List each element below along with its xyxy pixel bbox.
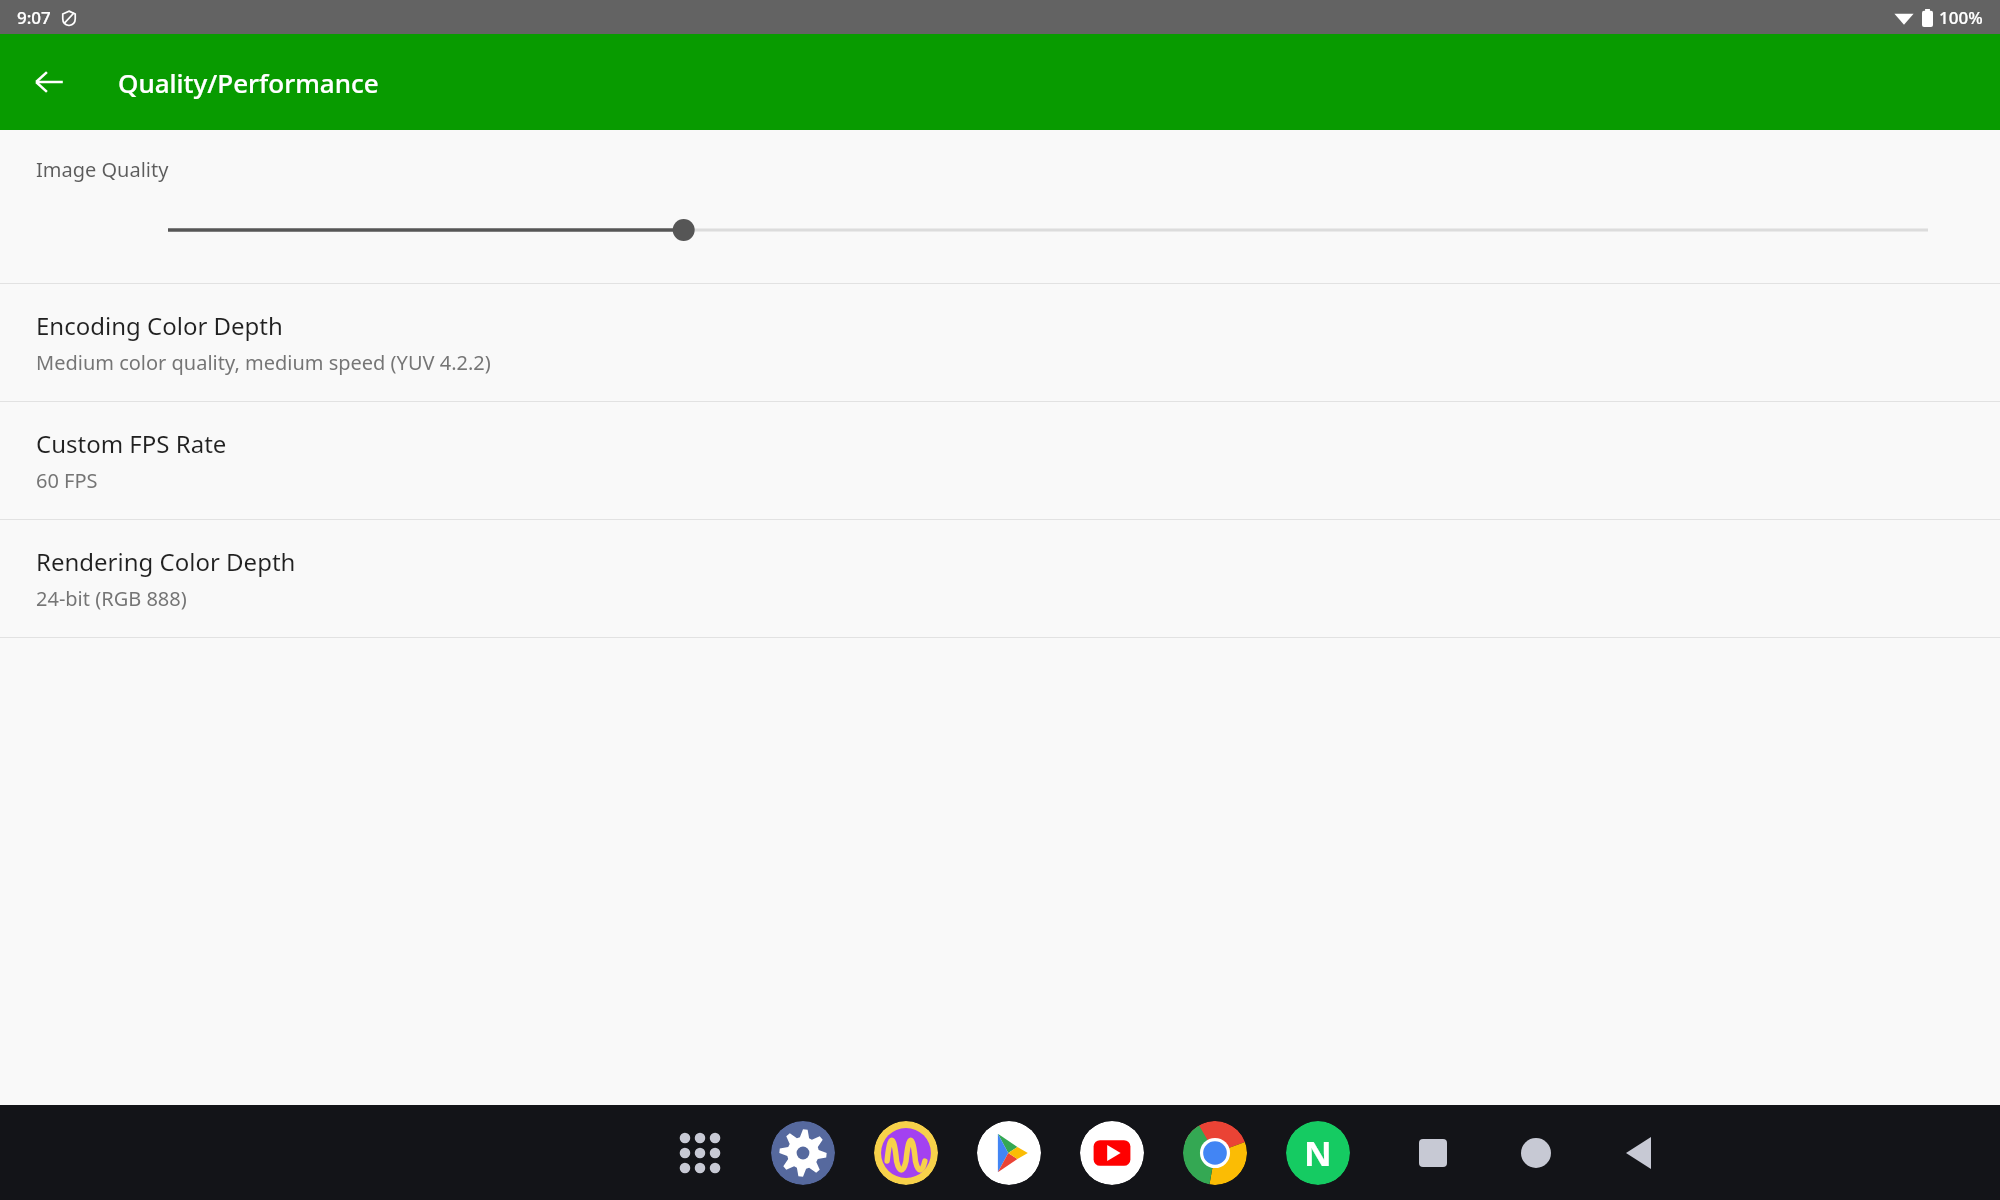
staticText: Rendering Color Depth [36,545,296,578]
button[interactable]: Custom FPS Rate [0,402,2000,519]
button[interactable]: Recent apps [1401,1121,1465,1185]
button[interactable]: Settings [771,1121,835,1185]
button[interactable]: Back [1607,1121,1671,1185]
staticText: Custom FPS Rate [36,427,227,460]
button[interactable]: Audio app [874,1121,938,1185]
button[interactable]: Play Store [977,1121,1041,1185]
button[interactable]: All apps [668,1121,732,1185]
staticText: Image Quality [36,156,169,183]
button[interactable]: Encoding Color Depth [0,284,2000,401]
button[interactable]: Image Quality [0,130,2000,283]
staticText: 100% [1939,6,1983,29]
button[interactable]: Notes [1286,1121,1350,1185]
staticText: Medium color quality, medium speed (YUV … [36,349,491,376]
button[interactable]: Rendering Color Depth [0,520,2000,637]
staticText: Quality/Performance [118,65,379,100]
button[interactable]: Home [1504,1121,1568,1185]
staticText: 60 FPS [36,467,98,494]
button[interactable]: YouTube [1080,1121,1144,1185]
staticText: N [1304,1130,1332,1176]
staticText: 24-bit (RGB 888) [36,585,187,612]
staticText: Encoding Color Depth [36,309,283,342]
button[interactable]: Back [26,59,72,105]
button[interactable]: Chrome [1183,1121,1247,1185]
staticText: 9:07 [17,6,51,29]
